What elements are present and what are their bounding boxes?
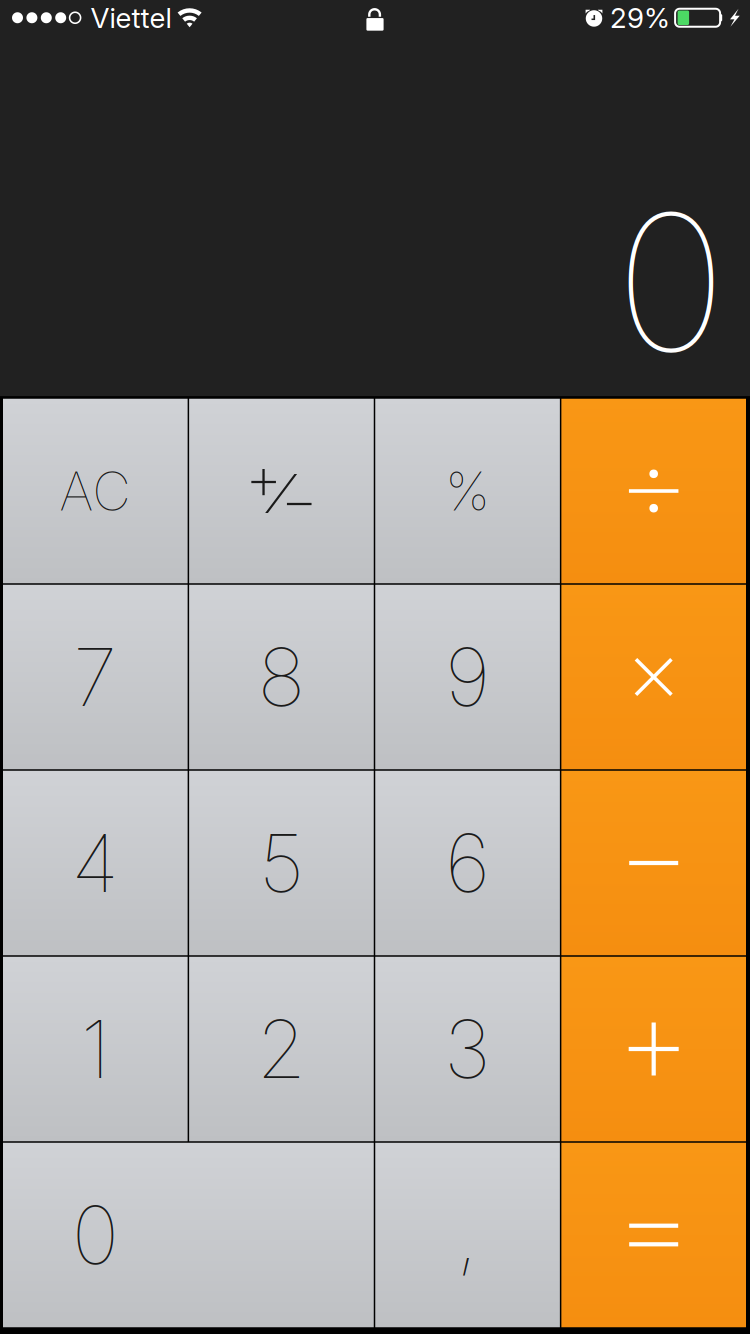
button[interactable]: 3 (375, 957, 560, 1141)
button[interactable]: 5 (189, 771, 374, 955)
staticText: 7 (73, 629, 117, 725)
staticText: Viettel (91, 1, 172, 35)
button[interactable]: AC (3, 399, 188, 583)
button[interactable]: 6 (375, 771, 560, 955)
button[interactable] (561, 1143, 746, 1327)
button[interactable]: 9 (375, 585, 560, 769)
staticText: 0 (615, 167, 727, 396)
button[interactable]: , (375, 1143, 560, 1327)
staticText: 8 (257, 629, 305, 725)
staticText: AC (59, 459, 131, 523)
staticText: 1 (81, 1001, 110, 1097)
button[interactable]: 0 (3, 1143, 374, 1327)
staticText: 6 (445, 815, 490, 911)
staticText: 9 (445, 629, 490, 725)
staticText: 0 (72, 1187, 119, 1283)
button[interactable]: 2 (189, 957, 374, 1141)
button[interactable] (561, 957, 746, 1141)
button[interactable] (561, 399, 746, 583)
button[interactable]: 7 (3, 585, 188, 769)
button[interactable] (561, 585, 746, 769)
staticText: % (445, 459, 490, 523)
button[interactable] (561, 771, 746, 955)
button[interactable]: % (375, 399, 560, 583)
button[interactable]: 8 (189, 585, 374, 769)
staticText: 2 (256, 1001, 306, 1097)
staticText: 4 (71, 815, 119, 911)
staticText: 29% (610, 1, 670, 35)
button[interactable] (189, 399, 374, 583)
staticText: 3 (444, 1001, 491, 1097)
button[interactable]: 1 (3, 957, 188, 1141)
staticText: , (457, 1187, 479, 1283)
button[interactable]: 4 (3, 771, 188, 955)
staticText: 5 (259, 815, 304, 911)
